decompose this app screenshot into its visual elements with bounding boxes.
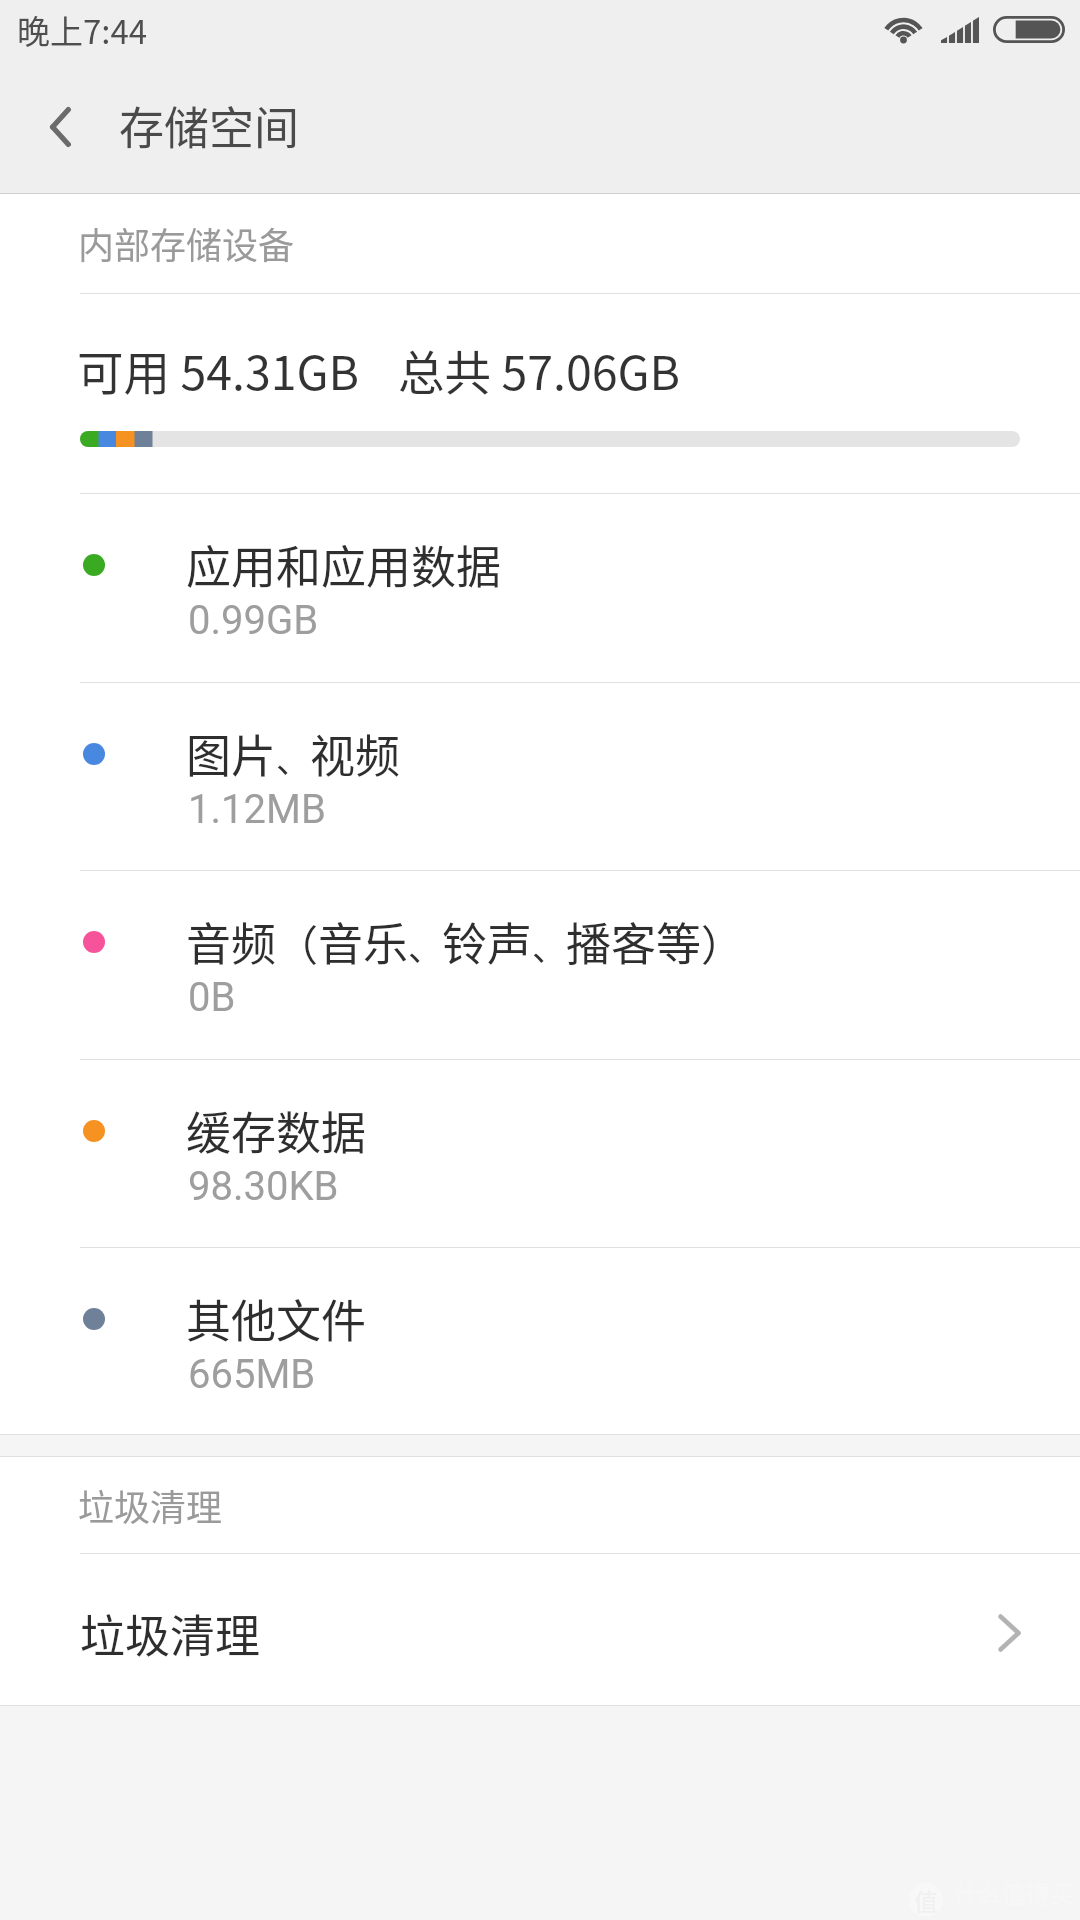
button[interactable]: 图片、视频 [0, 683, 1080, 870]
staticText: 其他文件 [186, 1286, 367, 1351]
button[interactable]: 音频（音乐、铃声、播客等） [0, 871, 1080, 1059]
staticText: 存储空间 [119, 93, 300, 158]
staticText: 可用 54.31GB [77, 336, 360, 403]
staticText: 垃圾清理 [78, 1479, 223, 1531]
staticText: 缓存数据 [186, 1098, 367, 1163]
staticText: 总共 57.06GB [398, 336, 681, 403]
button[interactable]: 应用和应用数据 [0, 494, 1080, 682]
staticText: 垃圾清理 [80, 1601, 261, 1666]
staticText: 0.99GB [188, 597, 319, 644]
button[interactable]: Back [0, 68, 118, 193]
button[interactable]: 缓存数据 [0, 1060, 1080, 1247]
staticText: 665MB [188, 1351, 316, 1398]
staticText: 音频（音乐、铃声、播客等） [186, 909, 744, 974]
button[interactable]: 其他文件 [0, 1248, 1080, 1434]
staticText: 值 [914, 1883, 938, 1917]
staticText: 图片、视频 [186, 721, 401, 786]
staticText: 98.30KB [188, 1163, 339, 1210]
button[interactable]: 垃圾清理 [0, 1554, 1080, 1705]
staticText: 应用和应用数据 [186, 532, 502, 597]
staticText: 晚上7:44 [17, 6, 148, 54]
staticText: 1.12MB [188, 786, 326, 833]
staticText: 内部存储设备 [78, 217, 295, 269]
staticText: 0B [188, 974, 236, 1021]
